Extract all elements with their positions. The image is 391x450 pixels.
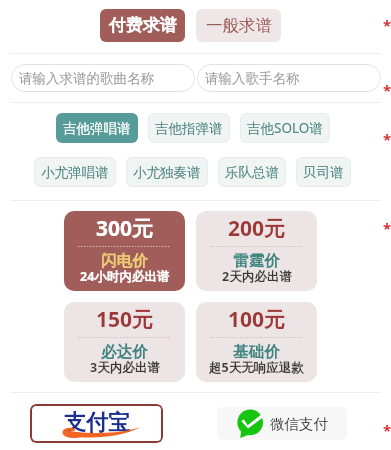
staticText: 小尤独奏谱	[133, 164, 201, 181]
staticText: 150元	[96, 305, 154, 334]
staticText: 吉他弹唱谱	[63, 120, 131, 137]
staticText: 支付宝	[64, 409, 130, 437]
button[interactable]: 请输入歌手名称	[197, 64, 381, 92]
staticText: 200元	[228, 214, 286, 243]
button[interactable]: 微信支付	[217, 407, 347, 440]
staticText: 雷霆价	[233, 251, 280, 271]
staticText: 小尤弹唱谱	[41, 164, 109, 181]
button[interactable]: 请输入求谱的歌曲名称	[11, 64, 195, 92]
button[interactable]: 小尤弹唱谱	[34, 157, 116, 187]
staticText: 基础价	[233, 342, 280, 362]
staticText: 请输入求谱的歌曲名称	[19, 70, 154, 87]
button[interactable]: 乐队总谱	[218, 157, 286, 187]
staticText: 100元	[228, 305, 286, 334]
staticText: 超5天无响应退款	[209, 359, 304, 376]
button[interactable]: 小尤独奏谱	[126, 157, 208, 187]
button[interactable]: 吉他弹唱谱	[56, 113, 138, 143]
staticText: 微信支付	[270, 415, 328, 433]
staticText: *	[383, 129, 391, 149]
button[interactable]: 付费求谱	[100, 9, 185, 42]
staticText: 300元	[96, 214, 154, 243]
staticText: 24小时内必出谱	[80, 268, 170, 285]
staticText: 一般求谱	[206, 15, 272, 36]
button[interactable]: Alipay 支付宝	[30, 404, 163, 443]
button[interactable]: 吉他指弹谱	[148, 113, 230, 143]
staticText: 吉他SOLO谱	[247, 119, 323, 137]
button[interactable]: 贝司谱	[296, 157, 351, 187]
staticText: *	[383, 218, 391, 238]
staticText: 乐队总谱	[225, 164, 279, 181]
button[interactable]: 300元	[64, 211, 185, 291]
button[interactable]: 100元	[196, 302, 317, 382]
staticText: 3天内必出谱	[90, 359, 160, 376]
staticText: 必达价	[101, 342, 148, 362]
staticText: 贝司谱	[303, 164, 344, 181]
button[interactable]: 一般求谱	[196, 9, 281, 42]
staticText: 2天内必出谱	[222, 268, 292, 285]
staticText: *	[383, 420, 391, 440]
button[interactable]: 吉他SOLO谱	[240, 113, 330, 143]
staticText: 请输入歌手名称	[205, 70, 300, 87]
staticText: 吉他指弹谱	[155, 120, 223, 137]
staticText: *	[383, 15, 391, 35]
staticText: *	[383, 80, 391, 100]
staticText: 付费求谱	[109, 15, 177, 36]
button[interactable]: 150元	[64, 302, 185, 382]
staticText: 闪电价	[101, 251, 148, 271]
button[interactable]: 200元	[196, 211, 317, 291]
